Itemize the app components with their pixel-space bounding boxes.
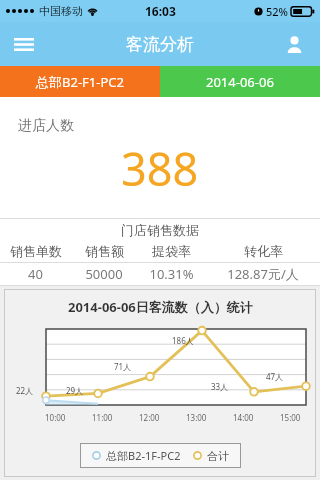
staticText: 10:00 bbox=[45, 412, 66, 423]
staticText: 40 bbox=[28, 265, 43, 283]
button[interactable]: 总部B2-F1-PC2 bbox=[0, 66, 160, 97]
staticText: 13:00 bbox=[186, 412, 207, 423]
staticText: 128.87元/人 bbox=[227, 265, 299, 283]
staticText: 2014-06-06 bbox=[206, 73, 274, 91]
staticText: 47人 bbox=[266, 371, 284, 382]
staticText: 50000 bbox=[85, 265, 123, 283]
staticText: 12:00 bbox=[139, 412, 160, 423]
staticText: 388 bbox=[121, 138, 199, 199]
staticText: 提袋率 bbox=[152, 243, 191, 259]
staticText: 合计 bbox=[207, 449, 229, 463]
staticText: 10.31% bbox=[149, 265, 194, 283]
button[interactable]: 总部B2-1F-PC2 bbox=[80, 443, 241, 468]
button[interactable]: Profile bbox=[272, 22, 316, 66]
staticText: 销售单数 bbox=[10, 243, 62, 259]
staticText: 总部B2-1F-PC2 bbox=[106, 448, 181, 463]
staticText: 总部B2-F1-PC2 bbox=[36, 73, 124, 91]
staticText: 16:03 bbox=[145, 3, 176, 19]
staticText: 15:00 bbox=[280, 412, 301, 423]
staticText: 转化率 bbox=[244, 243, 283, 259]
staticText: 11:00 bbox=[92, 412, 113, 423]
staticText: 门店销售数据 bbox=[121, 222, 199, 238]
staticText: 销售额 bbox=[85, 243, 124, 259]
button[interactable]: 2014-06-06 bbox=[160, 66, 320, 97]
staticText: 29人 bbox=[66, 385, 84, 396]
staticText: 71人 bbox=[114, 361, 132, 372]
button[interactable]: Menu bbox=[2, 22, 46, 66]
staticText: 22人 bbox=[16, 385, 34, 396]
staticText: 14:00 bbox=[233, 412, 254, 423]
staticText: 客流分析 bbox=[126, 34, 194, 55]
staticText: 进店人数 bbox=[18, 117, 74, 135]
staticText: 52% bbox=[266, 4, 288, 19]
staticText: 33人 bbox=[211, 381, 229, 392]
staticText: 186人 bbox=[172, 335, 194, 346]
staticText: 2014-06-06日客流数（入）统计 bbox=[68, 298, 253, 316]
staticText: 中国移动 bbox=[39, 4, 83, 18]
